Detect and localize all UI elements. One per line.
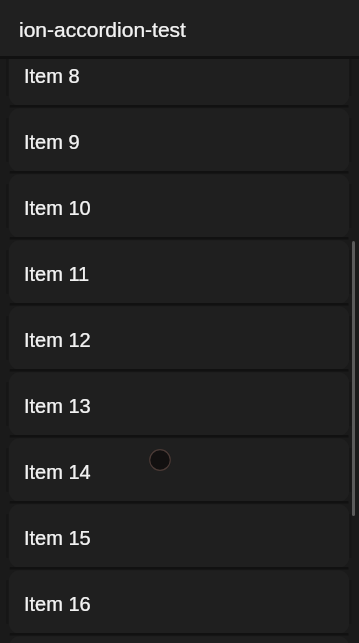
button[interactable]: Item 8 xyxy=(9,42,350,106)
button[interactable]: Item 15 xyxy=(9,504,350,568)
button[interactable]: Item 13 xyxy=(9,372,350,436)
button[interactable]: Item 14 xyxy=(9,438,350,502)
staticText: Item 11 xyxy=(24,263,90,285)
button[interactable]: Item 12 xyxy=(9,306,350,370)
button[interactable]: Item 16 xyxy=(9,570,350,634)
staticText: ion-accordion-test xyxy=(19,18,186,41)
staticText: Item 13 xyxy=(24,395,91,417)
staticText: Item 15 xyxy=(24,527,91,549)
staticText: Item 14 xyxy=(24,461,91,483)
staticText: Item 10 xyxy=(24,197,91,219)
button[interactable]: Item 10 xyxy=(9,174,350,238)
staticText: Item 8 xyxy=(24,65,80,87)
button[interactable]: Item 11 xyxy=(9,240,350,304)
button[interactable]: Item 9 xyxy=(9,108,350,172)
other: Selected item indicator xyxy=(149,449,171,471)
staticText: Item 16 xyxy=(24,593,91,615)
staticText: Item 9 xyxy=(24,131,80,153)
staticText: Item 12 xyxy=(24,329,91,351)
